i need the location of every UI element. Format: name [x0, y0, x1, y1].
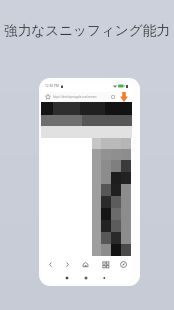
button[interactable]: Back [44, 258, 56, 271]
staticText: 強力なスニッフィング能力 [4, 22, 170, 39]
button[interactable]: Menu [117, 258, 129, 271]
button[interactable]: https://developer.apple.com/stream [43, 92, 117, 102]
button[interactable]: Tabs [99, 258, 111, 271]
staticText: https://developer.apple.com/stream [53, 95, 97, 99]
button[interactable]: Forward [61, 258, 73, 271]
button[interactable]: Download [119, 91, 128, 102]
staticText: 12:30 PM [45, 84, 59, 88]
button[interactable]: Recents [62, 271, 72, 284]
button[interactable]: Back [99, 271, 109, 284]
button[interactable]: Home [81, 271, 91, 284]
button[interactable]: Home [79, 258, 91, 271]
